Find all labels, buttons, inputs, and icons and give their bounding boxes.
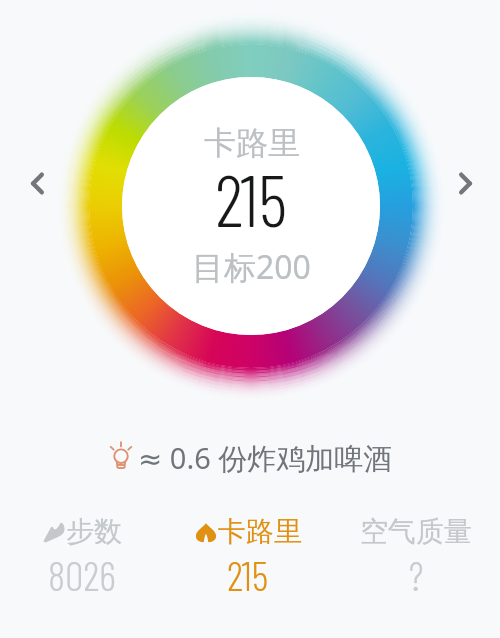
staticText: 215 bbox=[215, 155, 288, 241]
staticText: 步数 bbox=[66, 514, 122, 549]
button[interactable]: 卡路里 bbox=[178, 514, 318, 599]
button[interactable]: Previous day bbox=[15, 161, 59, 205]
button[interactable]: 空气质量 bbox=[346, 514, 486, 599]
staticText: 目标200 bbox=[192, 245, 311, 289]
staticText: ≈ 0.6 份炸鸡加啤酒 bbox=[138, 438, 393, 478]
staticText: 卡路里 bbox=[204, 123, 300, 163]
staticText: 215 bbox=[227, 550, 269, 599]
staticText: ? bbox=[409, 550, 424, 599]
staticText: 卡路里 bbox=[218, 514, 302, 549]
button[interactable]: 步数 bbox=[12, 514, 152, 599]
staticText: 空气质量 bbox=[360, 514, 472, 549]
button[interactable]: Next day bbox=[444, 161, 488, 205]
staticText: 8026 bbox=[48, 550, 116, 599]
